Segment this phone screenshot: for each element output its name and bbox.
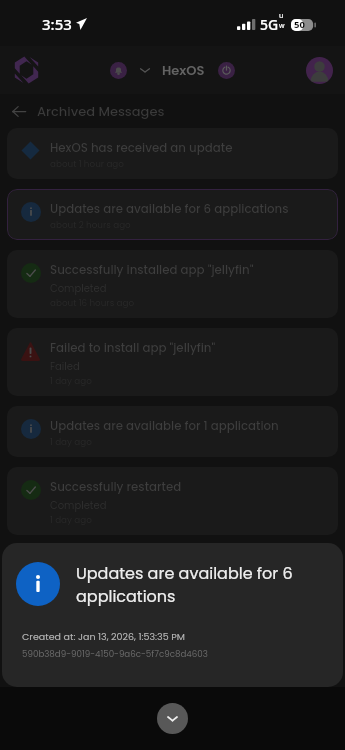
button[interactable]: Collapse details — [157, 703, 188, 734]
staticText: about 16 hours ago — [50, 297, 135, 309]
staticText: Failed to install app "jellyfin" — [50, 340, 216, 356]
staticText: Created at: Jan 13, 2026, 1:53:35 PM — [22, 630, 185, 643]
staticText: 1 day ago — [50, 514, 92, 526]
staticText: Successfully installed app "jellyfin" — [50, 262, 254, 278]
staticText: Failed — [50, 360, 80, 373]
button[interactable]: Notifications — [110, 62, 127, 79]
button[interactable]: Profile — [306, 57, 333, 84]
staticText: Updates are available for 6 applications — [50, 201, 289, 217]
staticText: Successfully restarted — [50, 479, 182, 495]
staticText: Archived Messages — [37, 102, 165, 120]
staticText: w — [279, 21, 285, 31]
staticText: 50 — [294, 18, 305, 31]
staticText: Completed — [50, 499, 107, 512]
button[interactable]: Successfully restarted — [7, 467, 338, 535]
button[interactable]: Power — [218, 62, 235, 79]
staticText: 590b38d9-9019-4150-9a6c-5f7c9c8d4603 — [22, 648, 208, 660]
button[interactable]: Failed to install app "jellyfin" — [7, 328, 338, 396]
button[interactable]: Updates are available for 1 application — [7, 406, 338, 457]
staticText: 5G — [260, 15, 279, 34]
staticText: HexOS has received an update — [50, 140, 233, 156]
staticText: Completed — [50, 282, 107, 295]
button[interactable]: HexOS — [162, 61, 205, 79]
staticText: 1 day ago — [50, 375, 92, 387]
staticText: 1 day ago — [50, 436, 92, 448]
button[interactable]: Successfully installed app "jellyfin" — [7, 250, 338, 318]
staticText: about 1 hour ago — [50, 158, 124, 170]
button[interactable]: Updates are available for 6 applications — [7, 189, 338, 240]
button[interactable]: Back — [8, 100, 30, 122]
button[interactable]: Switch system — [139, 64, 151, 76]
staticText: Updates are available for 6 applications — [76, 562, 327, 608]
button[interactable]: HexOS has received an update — [7, 128, 338, 179]
staticText: 3:53 — [42, 14, 72, 34]
staticText: Updates are available for 1 application — [50, 418, 279, 434]
staticText: about 2 hours ago — [50, 219, 131, 231]
staticText: u — [279, 11, 284, 21]
